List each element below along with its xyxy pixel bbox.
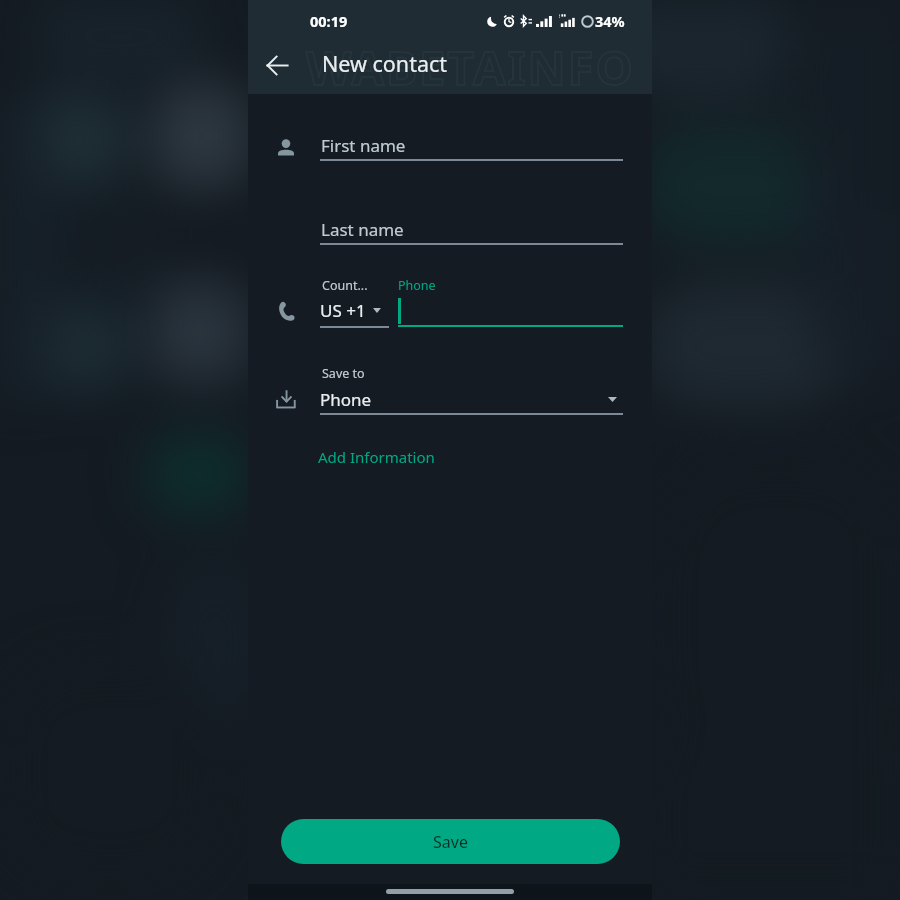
staticText: Save to bbox=[322, 365, 365, 382]
button[interactable] bbox=[320, 215, 623, 245]
button[interactable]: Save bbox=[281, 819, 620, 864]
staticText: 00:19 bbox=[310, 11, 348, 31]
staticText: US +1 bbox=[320, 299, 366, 322]
staticText: First name bbox=[321, 134, 406, 157]
staticText: 34% bbox=[595, 11, 625, 31]
button[interactable] bbox=[396, 275, 623, 328]
staticText: Add Information bbox=[318, 447, 435, 467]
staticText: New contact bbox=[322, 49, 448, 78]
button[interactable]: Country code bbox=[320, 275, 389, 328]
button[interactable]: Back bbox=[255, 43, 300, 88]
staticText: Phone bbox=[398, 277, 436, 294]
button[interactable]: Save to bbox=[320, 363, 623, 416]
staticText: WABETAINFO bbox=[306, 35, 635, 99]
staticText: Save bbox=[433, 831, 468, 853]
button[interactable] bbox=[320, 131, 623, 161]
staticText: Count... bbox=[322, 277, 368, 294]
staticText: Last name bbox=[321, 218, 404, 241]
button[interactable]: Add Information bbox=[318, 447, 435, 467]
staticText: Phone bbox=[320, 388, 372, 411]
